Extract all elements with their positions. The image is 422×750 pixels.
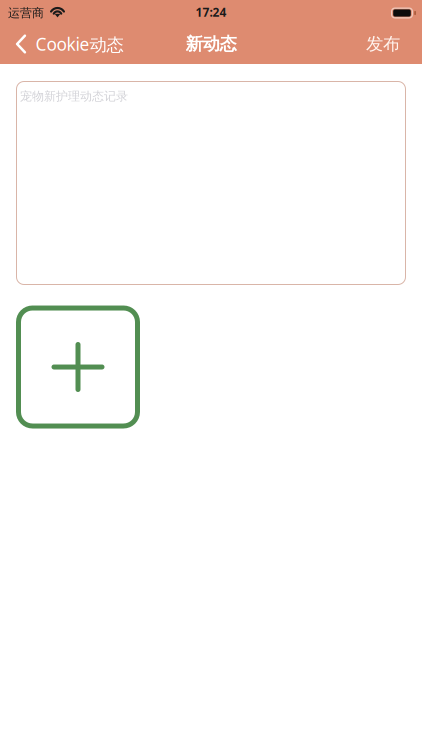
button[interactable]: 发布 xyxy=(350,23,416,65)
button[interactable]: Add photo xyxy=(16,305,140,428)
staticText: 17:24 xyxy=(195,4,226,20)
staticText: 宠物新护理动态记录 xyxy=(20,89,128,104)
staticText: Cookie动态 xyxy=(35,32,123,55)
button[interactable]: Cookie动态 xyxy=(1,23,133,65)
staticText: 新动态 xyxy=(185,33,236,55)
staticText: 发布 xyxy=(366,33,400,55)
staticText: 运营商 xyxy=(8,6,44,20)
